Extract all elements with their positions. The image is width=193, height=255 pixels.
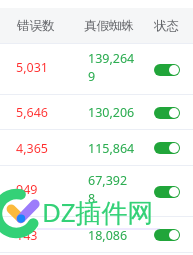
staticText: 5,646 [16,104,48,121]
button[interactable]: Toggle status [154,229,180,241]
staticText: 错误数 [17,18,55,34]
button[interactable]: 949 [0,166,193,217]
staticText: 67,392 8 [88,172,128,206]
button[interactable]: Toggle status [154,107,180,119]
button[interactable]: Toggle status [154,142,180,154]
staticText: 143 [16,227,38,244]
button[interactable]: 4,365 [0,130,193,166]
staticText: 5,031 [16,59,48,76]
button[interactable]: Toggle status [154,64,180,76]
staticText: 139,264 9 [88,50,135,84]
button[interactable]: Toggle status [154,186,180,198]
staticText: 949 [16,181,38,198]
staticText: 真假蜘蛛 [84,18,134,34]
button[interactable]: 5,646 [0,95,193,130]
staticText: 状态 [154,18,179,34]
staticText: DZ插件网 [42,194,154,230]
button[interactable]: 143 [0,217,193,253]
staticText: 115,864 [88,140,135,157]
staticText: 4,365 [16,140,48,157]
staticText: 18,086 [88,227,128,244]
staticText: 130,206 [88,104,135,121]
button[interactable]: 5,031 [0,44,193,95]
